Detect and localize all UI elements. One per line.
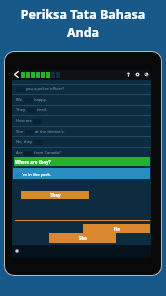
button[interactable]: He <box>83 224 150 233</box>
button[interactable]: She <box>12 127 151 137</box>
staticText: She <box>79 235 87 241</box>
staticText: tired. <box>37 107 48 113</box>
staticText: She <box>16 129 24 135</box>
button[interactable]: 're in the park. <box>13 168 150 179</box>
button[interactable]: Hint <box>126 72 131 77</box>
button[interactable]: They <box>21 191 89 199</box>
button[interactable]: Back <box>13 70 19 79</box>
staticText: you a police officer? <box>26 86 65 92</box>
button[interactable]: you a police officer? <box>12 84 151 94</box>
staticText: Are <box>16 150 23 156</box>
staticText: from Canada? <box>34 150 61 156</box>
staticText: No, they <box>16 139 33 145</box>
staticText: How are <box>16 118 32 124</box>
staticText: 're in the park. <box>22 171 51 177</box>
button[interactable]: No, they <box>12 137 151 147</box>
staticText: Periksa Tata Bahasa Anda <box>16 6 150 40</box>
button[interactable]: Sound <box>144 72 149 77</box>
button[interactable]: App logo <box>15 249 19 253</box>
staticText: We <box>16 97 23 103</box>
button[interactable]: She <box>49 233 116 243</box>
staticText: happy. <box>34 97 47 103</box>
button[interactable]: Where are they? <box>14 157 150 166</box>
staticText: Where are they? <box>15 159 51 165</box>
button[interactable]: Settings <box>135 72 140 77</box>
button[interactable]: We <box>12 95 151 105</box>
staticText: They <box>50 192 61 198</box>
button[interactable]: How are <box>12 116 151 126</box>
button[interactable]: Are <box>12 148 151 158</box>
staticText: at the dentist's. <box>35 129 65 135</box>
staticText: They <box>16 107 26 113</box>
button[interactable]: They <box>12 105 151 115</box>
staticText: He <box>114 226 120 232</box>
